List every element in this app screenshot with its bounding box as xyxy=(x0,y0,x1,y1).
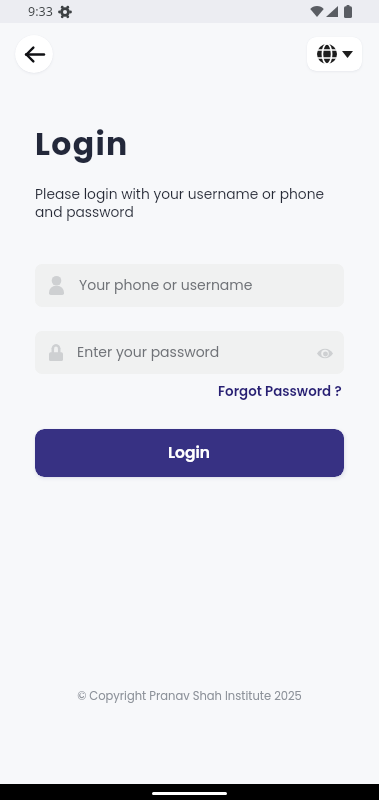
staticText: 9:33 xyxy=(28,3,53,20)
button[interactable]: Back xyxy=(15,35,53,73)
button[interactable]: Your phone or username xyxy=(35,264,344,307)
staticText: Login xyxy=(35,122,129,166)
button[interactable]: Forgot Password ? xyxy=(218,382,342,401)
staticText: Your phone or username xyxy=(79,275,253,295)
staticText: Login xyxy=(168,442,211,464)
staticText: Please login with your username or phone… xyxy=(35,185,337,222)
button[interactable]: Enter your password xyxy=(35,331,344,374)
button[interactable]: Login xyxy=(35,429,344,477)
button[interactable]: Change language xyxy=(307,37,362,71)
staticText: Enter your password xyxy=(77,342,220,362)
button[interactable]: Show password xyxy=(314,341,336,365)
staticText: © Copyright Pranav Shah Institute 2025 xyxy=(0,688,379,704)
